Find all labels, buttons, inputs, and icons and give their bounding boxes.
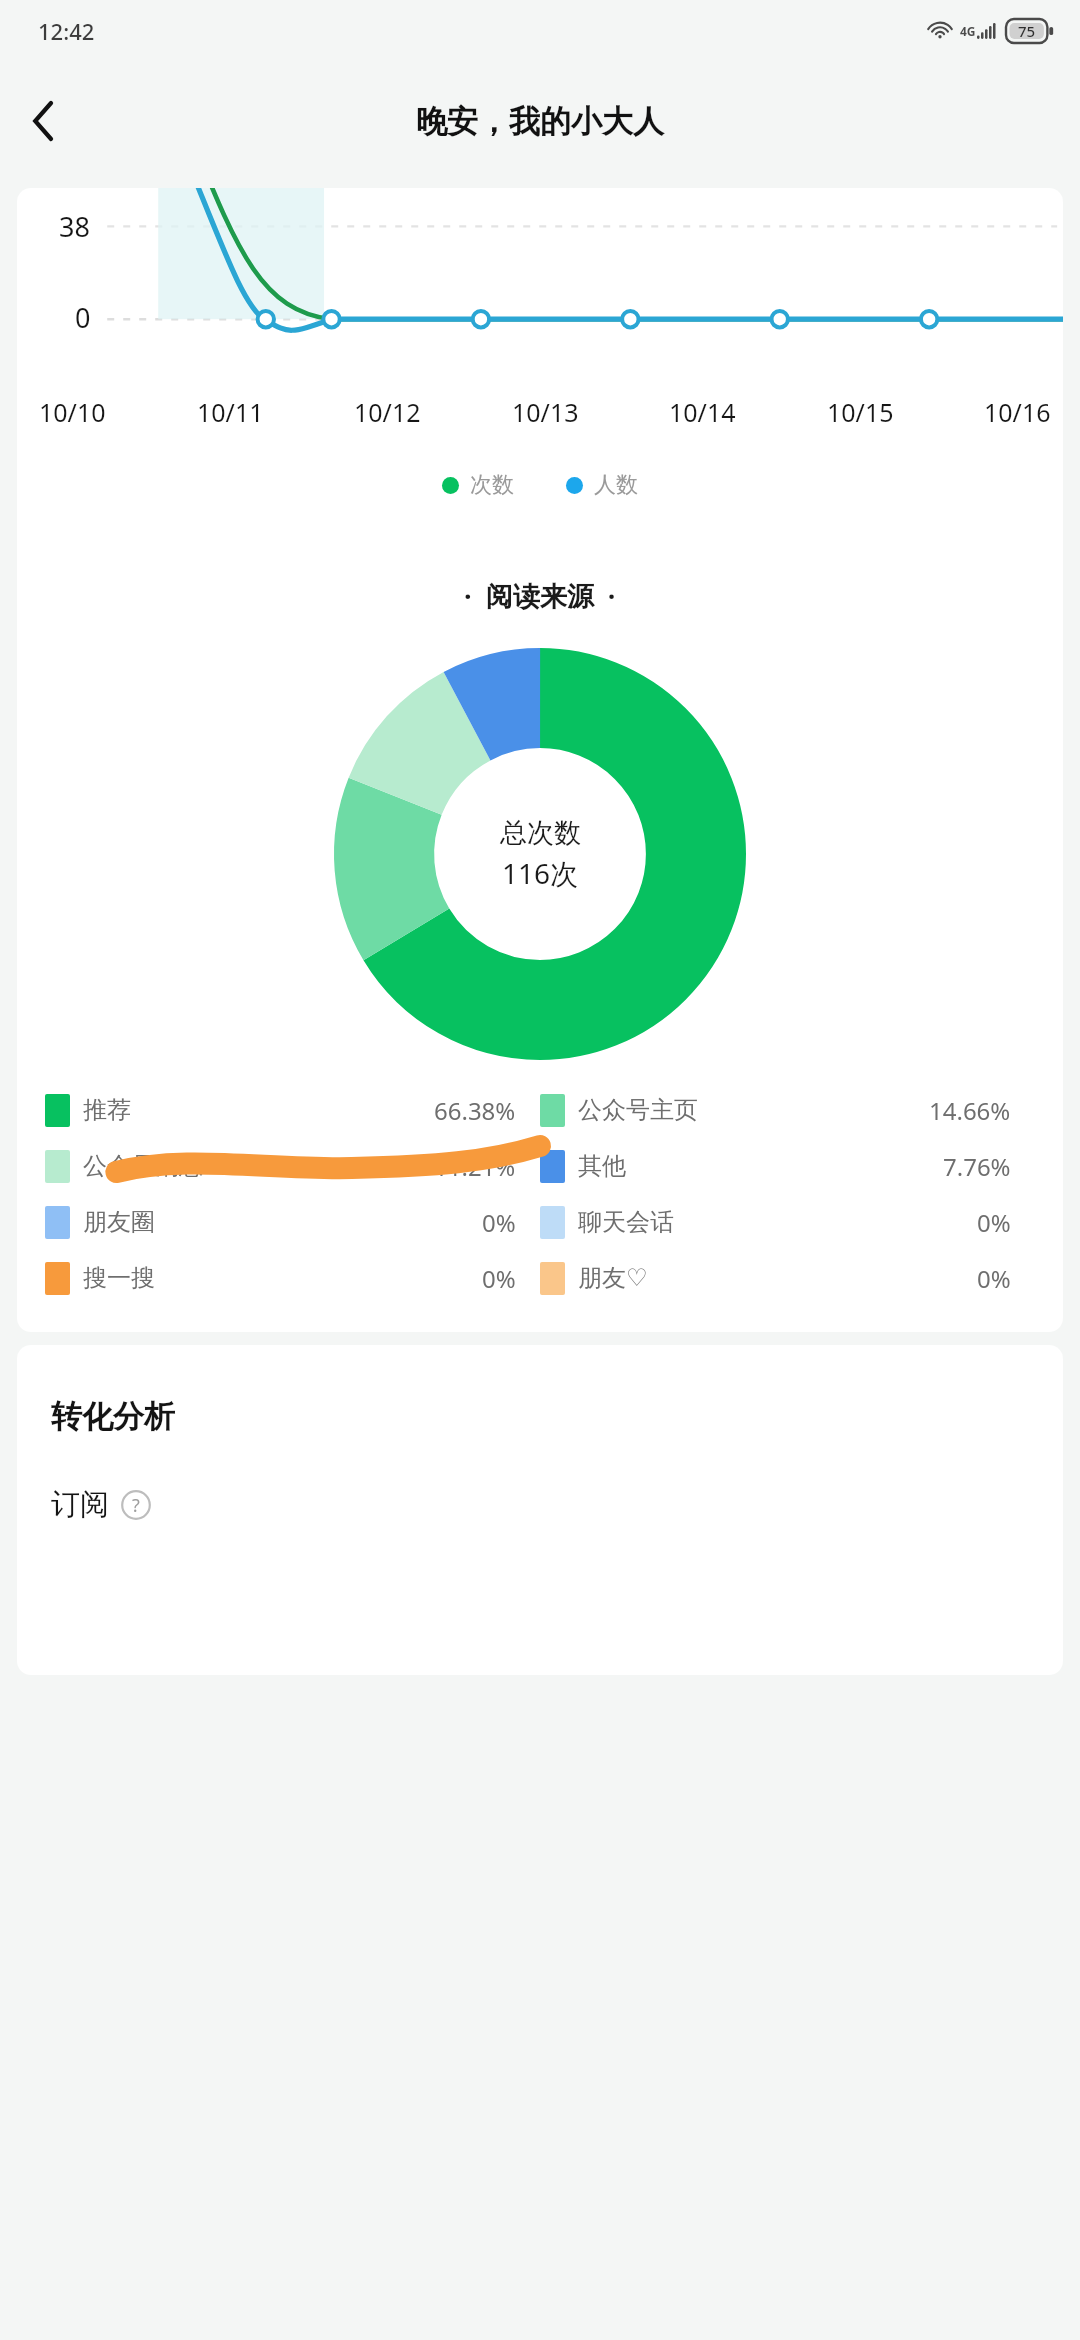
staticText: 0 [75, 299, 91, 336]
button[interactable]: 搜一搜 [45, 1250, 540, 1306]
staticText: 其他 [578, 1151, 626, 1181]
staticText: 0% [482, 1206, 516, 1239]
staticText: 11.21% [434, 1150, 516, 1183]
staticText: 66.38% [434, 1094, 516, 1127]
staticText: 10/14 [669, 395, 736, 429]
staticText: 10/16 [984, 395, 1051, 429]
staticText: 116次 [502, 854, 579, 892]
staticText: 10/12 [354, 395, 421, 429]
button[interactable]: 推荐 [45, 1082, 540, 1138]
staticText: 4G [960, 23, 976, 39]
button[interactable]: 聊天会话 [540, 1194, 1035, 1250]
button[interactable]: 公众号主页 [540, 1082, 1035, 1138]
staticText: 10/11 [197, 395, 264, 429]
staticText: 7.76% [943, 1150, 1011, 1183]
staticText: ? [132, 1493, 140, 1518]
staticText: 公众号主页 [578, 1095, 698, 1125]
staticText: 转化分析 [51, 1397, 175, 1436]
staticText: 38 [59, 208, 90, 245]
staticText: 搜一搜 [83, 1263, 155, 1293]
staticText: 0% [482, 1262, 516, 1295]
staticText: 75 [1018, 21, 1036, 41]
button[interactable]: 公众号消息 [45, 1138, 540, 1194]
other: 帮助 [121, 1490, 151, 1520]
staticText: 10/15 [827, 395, 894, 429]
staticText: 14.66% [929, 1094, 1011, 1127]
staticText: 人数 [594, 471, 638, 499]
button[interactable]: 朋友圈 [45, 1194, 540, 1250]
staticText: 订阅 [51, 1486, 109, 1523]
staticText: 公众号消息 [83, 1151, 203, 1181]
staticText: 10/13 [512, 395, 579, 429]
button[interactable]: Back [14, 91, 74, 151]
staticText: 晚安，我的小大人 [416, 102, 664, 141]
staticText: 聊天会话 [578, 1207, 674, 1237]
staticText: 朋友♡ [578, 1263, 648, 1293]
staticText: 推荐 [83, 1095, 131, 1125]
button[interactable]: 其他 [540, 1138, 1035, 1194]
staticText: 0% [977, 1206, 1011, 1239]
staticText: · 阅读来源 · [464, 577, 616, 614]
staticText: 总次数 [500, 816, 581, 850]
button[interactable]: 朋友♡ [540, 1250, 1035, 1306]
staticText: 10/10 [39, 395, 106, 429]
staticText: 12:42 [38, 16, 95, 46]
staticText: 0% [977, 1262, 1011, 1295]
staticText: 朋友圈 [83, 1207, 155, 1237]
staticText: 次数 [470, 471, 514, 499]
button[interactable]: 订阅 [51, 1486, 151, 1523]
